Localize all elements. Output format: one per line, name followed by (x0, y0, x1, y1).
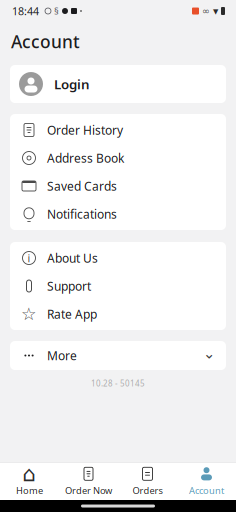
staticText: Orders (132, 484, 162, 497)
staticText: Login (54, 75, 90, 93)
staticText: i (27, 251, 30, 265)
staticText: Rate App (47, 306, 97, 322)
button[interactable]: ☆ (10, 300, 226, 328)
staticText: ▾ (213, 5, 218, 17)
staticText: Address Book (47, 150, 124, 166)
button[interactable]: Order Now (59, 463, 118, 500)
button[interactable]: Login (10, 65, 226, 103)
staticText: ⌂ (22, 462, 36, 486)
staticText: Order Now (65, 484, 112, 497)
button[interactable]: Orders (118, 463, 177, 500)
staticText: About Us (47, 250, 98, 266)
staticText: Order History (47, 122, 123, 138)
staticText: § (54, 5, 59, 17)
staticText: 18:44 (12, 4, 39, 18)
staticText: ⌄ (203, 345, 215, 362)
button[interactable]: Support (10, 272, 226, 300)
staticText: Saved Cards (47, 178, 117, 194)
staticText: More (47, 347, 77, 363)
button[interactable]: ⌂ (0, 463, 59, 500)
staticText: Account (189, 484, 224, 497)
button[interactable]: Address Book (10, 144, 226, 172)
button[interactable]: More (10, 341, 226, 370)
button[interactable]: i (10, 244, 226, 272)
button[interactable]: Order History (10, 116, 226, 144)
staticText: Account (11, 30, 80, 53)
button[interactable]: Account (177, 463, 236, 500)
staticText: 10.28 - 50145 (91, 378, 145, 389)
staticText: Notifications (47, 206, 117, 222)
staticText: Support (47, 278, 91, 294)
staticText: ∞ (202, 6, 210, 16)
staticText: ☆ (21, 304, 37, 324)
staticText: Home (16, 484, 43, 497)
button[interactable]: Notifications (10, 200, 226, 228)
button[interactable]: Saved Cards (10, 172, 226, 200)
